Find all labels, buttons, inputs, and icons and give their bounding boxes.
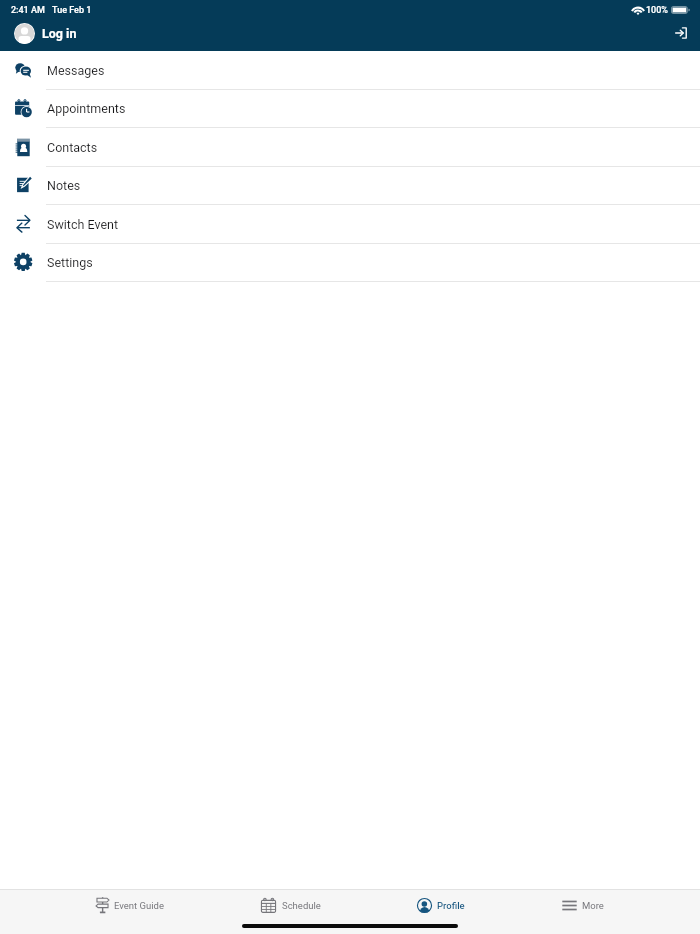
staticText: Appointments — [47, 101, 126, 116]
staticText: Contacts — [47, 140, 98, 155]
button[interactable]: Switch Event — [0, 205, 700, 244]
staticText: Switch Event — [47, 217, 119, 232]
button[interactable]: Profile — [417, 890, 465, 920]
button[interactable]: Log in — [14, 23, 77, 44]
button[interactable]: Notes — [0, 167, 700, 205]
staticText: Settings — [47, 255, 93, 270]
button[interactable]: Event Guide — [96, 890, 164, 920]
staticText: Notes — [47, 178, 81, 193]
staticText: Messages — [47, 63, 105, 78]
button[interactable]: Contacts — [0, 128, 700, 167]
staticText: 100% — [646, 5, 668, 16]
staticText: 2:41 AM — [11, 5, 45, 16]
staticText: Schedule — [282, 900, 321, 911]
button[interactable]: Appointments — [0, 90, 700, 128]
staticText: Tue Feb 1 — [52, 5, 92, 16]
staticText: Event Guide — [114, 900, 164, 911]
staticText: Profile — [437, 900, 465, 911]
button[interactable]: Log in — [666, 22, 696, 44]
button[interactable]: Settings — [0, 244, 700, 282]
staticText: Log in — [42, 26, 77, 41]
staticText: More — [582, 900, 604, 911]
button[interactable]: Schedule — [261, 890, 321, 920]
button[interactable]: More — [562, 890, 604, 920]
button[interactable]: Messages — [0, 51, 700, 90]
